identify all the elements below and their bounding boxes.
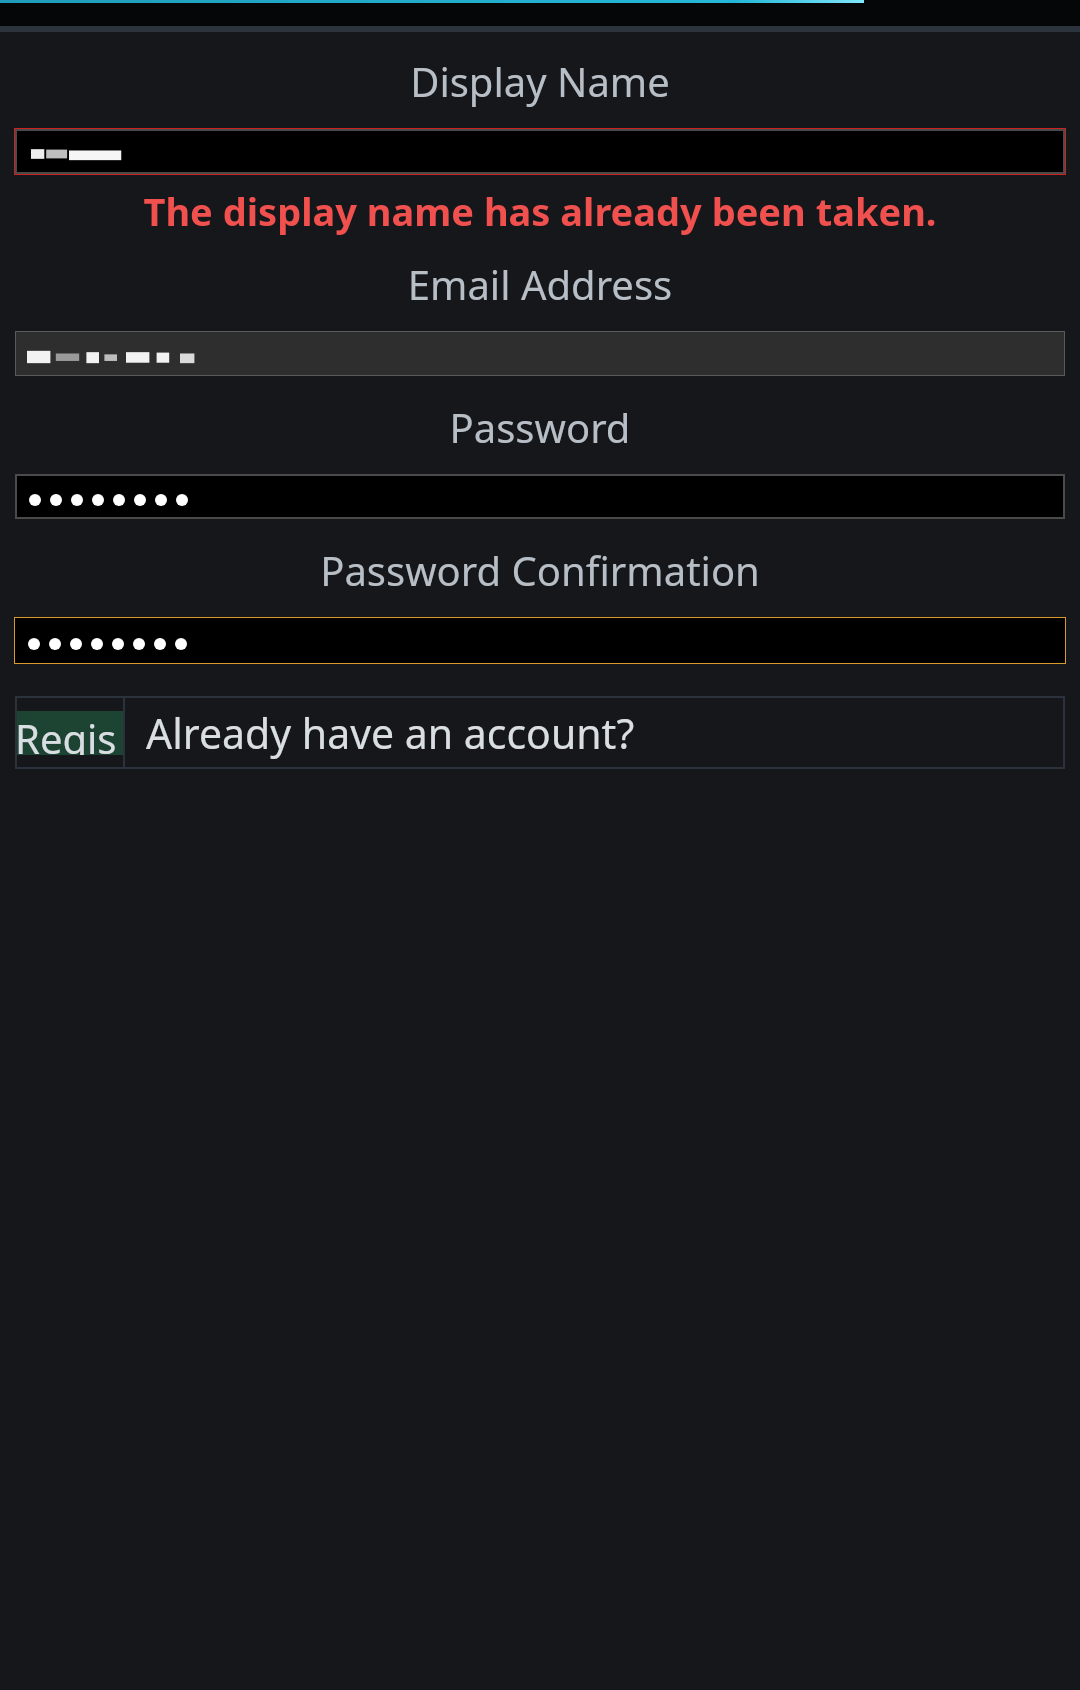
button[interactable] bbox=[17, 131, 1063, 172]
staticText: Password bbox=[0, 400, 1080, 454]
button[interactable] bbox=[15, 618, 1065, 663]
staticText: The display name has already been taken. bbox=[30, 185, 1050, 237]
staticText: Email Address bbox=[0, 257, 1080, 311]
staticText: Password Confirmation bbox=[0, 543, 1080, 597]
staticText: Display Name bbox=[0, 54, 1080, 108]
staticText: Register bbox=[15, 711, 124, 755]
button[interactable]: Already have an account? bbox=[124, 696, 1065, 769]
button[interactable]: Register bbox=[15, 711, 124, 755]
button[interactable] bbox=[15, 331, 1065, 376]
button[interactable] bbox=[17, 476, 1063, 517]
staticText: Already have an account? bbox=[146, 705, 635, 761]
